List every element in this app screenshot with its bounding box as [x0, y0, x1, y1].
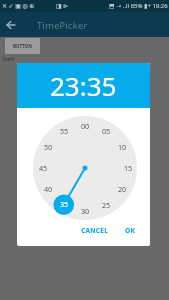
staticText: 05 — [102, 126, 111, 136]
button[interactable]: CANCEL — [77, 222, 113, 239]
staticText: BUTTON — [13, 43, 32, 49]
button[interactable]: OK — [121, 222, 140, 239]
staticText: 40 — [44, 184, 53, 194]
staticText: ◨ ⊳ — [56, 2, 69, 10]
staticText: 30 — [81, 206, 90, 216]
staticText: 23:35 — [50, 68, 117, 103]
staticText: 15 — [124, 163, 133, 173]
staticText: ✕ ✓ ▣ ◎ ⊕ — [2, 2, 35, 10]
staticText: 25 — [102, 200, 111, 210]
staticText: TextV — [2, 56, 15, 63]
staticText: 10 — [118, 142, 127, 152]
staticText: 20 — [118, 184, 127, 194]
staticText: 35 — [60, 200, 69, 210]
staticText: CANCEL — [81, 226, 109, 235]
staticText: 50 — [44, 142, 53, 152]
button[interactable]: BUTTON — [5, 38, 40, 54]
staticText: 55 — [60, 126, 69, 136]
staticText: ⬒ ➝ ..ll 65% ▮+ 19:26 — [109, 2, 168, 10]
button[interactable] — [4, 18, 17, 31]
staticText: 00 — [81, 121, 90, 131]
staticText: OK — [125, 226, 136, 235]
staticText: TimePicker — [37, 19, 88, 32]
staticText: 45 — [39, 163, 48, 173]
